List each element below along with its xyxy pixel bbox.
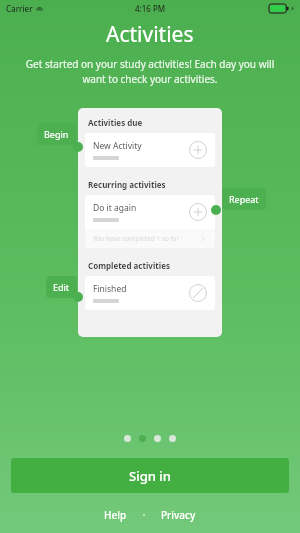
button[interactable]: Edit [46,276,77,298]
button[interactable]: Repeat [222,188,266,210]
staticText: You have completed 1 so far [93,234,199,243]
button[interactable]: Begin [37,123,76,145]
staticText: 4:16 PM [135,3,166,14]
button[interactable]: You have completed 1 so far [85,229,215,248]
button[interactable]: Help [98,505,133,525]
staticText: Activities [106,20,194,49]
staticText: New Activity [93,140,142,152]
button[interactable]: New Activity [85,133,215,167]
staticText: Do it again [93,202,137,214]
staticText: Begin [44,128,69,140]
staticText: Sign in [129,467,171,485]
staticText: Repeat [229,193,259,205]
button[interactable] [154,435,161,442]
button[interactable]: Finished [85,276,215,310]
staticText: Carrier [6,3,33,14]
staticText: ⚡ [290,5,295,13]
button[interactable]: Add [189,203,207,221]
staticText: Completed activities [88,260,170,271]
button[interactable]: Do it again [85,195,215,229]
button[interactable] [124,435,131,442]
staticText: Privacy [161,508,196,522]
button[interactable] [139,435,146,442]
staticText: Help [104,508,127,522]
staticText: Get started on your study activities! Ea… [24,57,276,86]
staticText: Finished [93,283,127,295]
button[interactable]: Add [189,141,207,159]
staticText: Activities due [88,117,143,128]
staticText: Edit [53,281,70,293]
button[interactable]: Privacy [155,505,202,525]
button[interactable]: Edit [189,284,207,302]
button[interactable] [169,435,176,442]
button[interactable]: Sign in [11,458,289,493]
staticText: Recurring activities [88,179,166,190]
